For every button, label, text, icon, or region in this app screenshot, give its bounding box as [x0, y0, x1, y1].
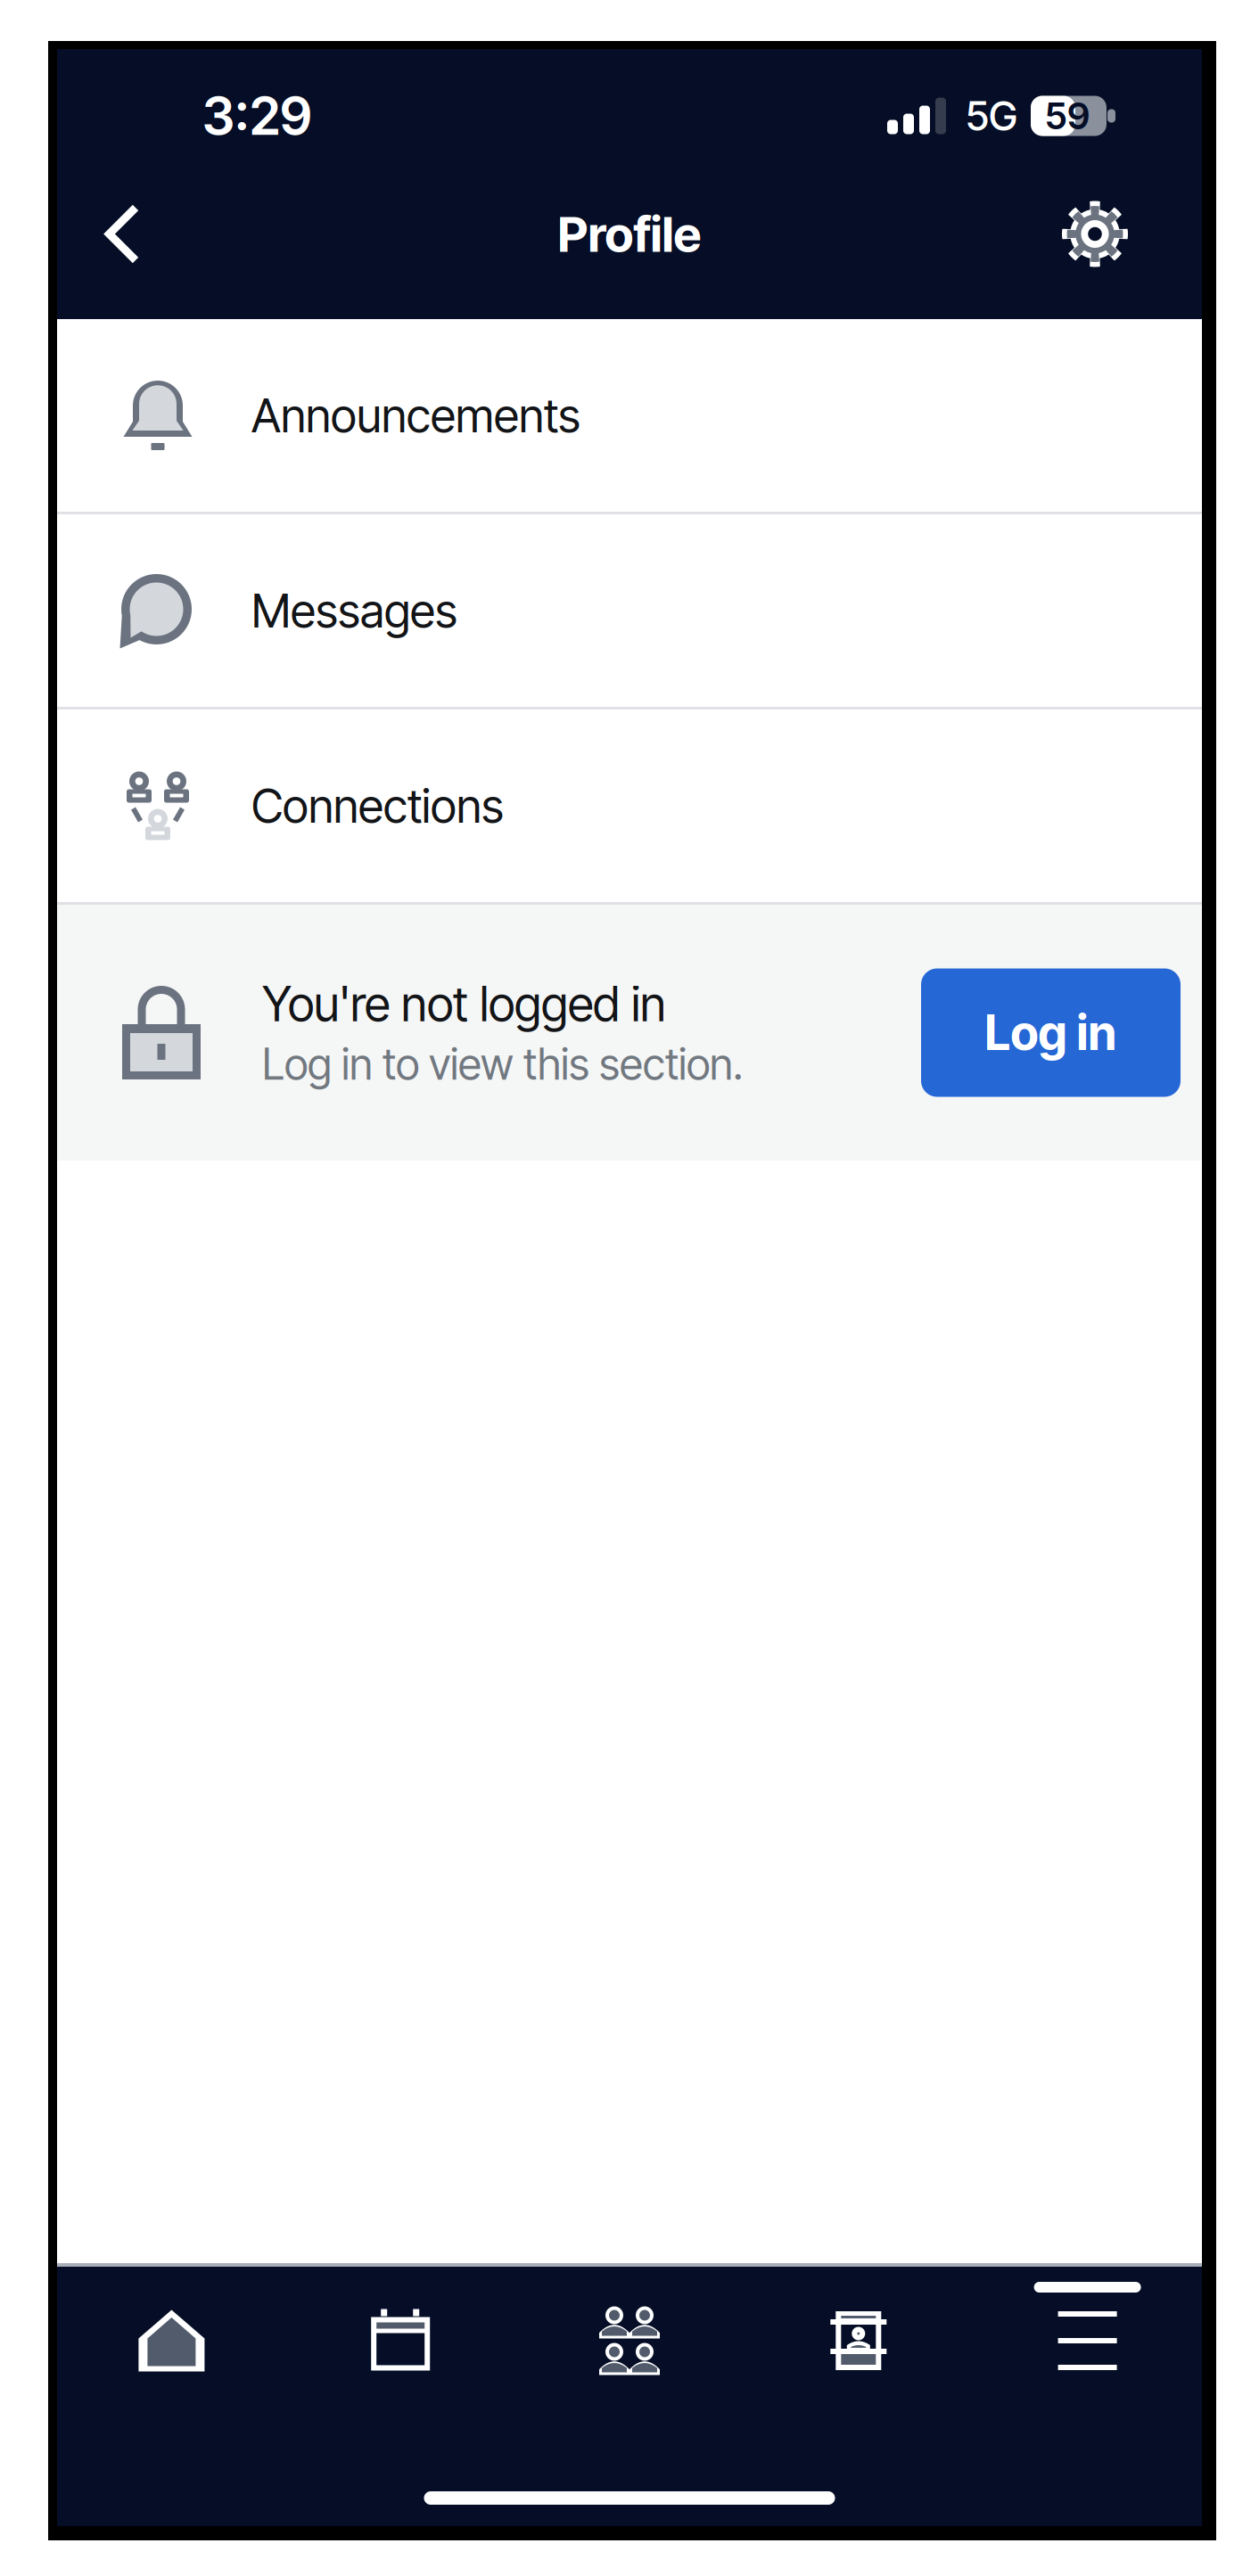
- staticText: Messages: [251, 582, 457, 639]
- button[interactable]: Home: [57, 2267, 286, 2415]
- button[interactable]: Log in: [921, 968, 1181, 1097]
- button[interactable]: Announcements: [57, 319, 1202, 512]
- staticText: Log in: [985, 1004, 1117, 1061]
- button[interactable]: Messages: [57, 514, 1202, 707]
- button[interactable]: Back: [57, 183, 187, 285]
- staticText: Profile: [558, 204, 701, 263]
- button[interactable]: More: [973, 2267, 1202, 2415]
- staticText: Connections: [251, 778, 504, 834]
- staticText: Log in to view this section.: [262, 1038, 743, 1090]
- button[interactable]: Settings: [988, 183, 1202, 285]
- button[interactable]: Connections: [57, 710, 1202, 902]
- staticText: Announcements: [251, 387, 580, 443]
- staticText: 59: [1045, 94, 1090, 138]
- staticText: You're not logged in: [262, 975, 666, 1033]
- staticText: 3:29: [202, 84, 312, 148]
- staticText: 5G: [966, 91, 1017, 140]
- button[interactable]: Attendees: [515, 2267, 744, 2415]
- button[interactable]: Schedule: [286, 2267, 515, 2415]
- button[interactable]: Exhibitors: [744, 2267, 973, 2415]
